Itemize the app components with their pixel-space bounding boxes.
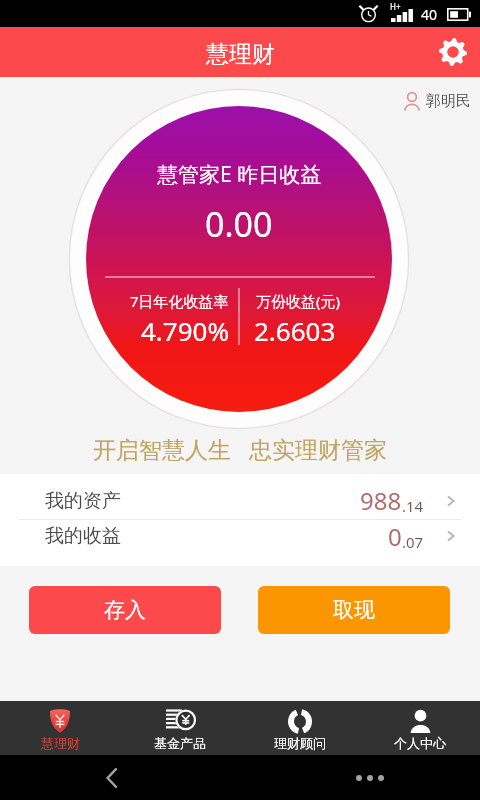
button[interactable]: Back [96, 762, 128, 794]
staticText: 开启智慧人生 忠实理财管家 [0, 433, 480, 464]
button[interactable]: 我的收益 [0, 513, 480, 559]
staticText: 慧理财 [206, 40, 275, 69]
staticText: 988 [360, 484, 402, 517]
staticText: 0.00 [205, 201, 273, 247]
staticText: 郭明民 [426, 92, 471, 111]
staticText: 7日年化收益率 [130, 291, 229, 311]
button[interactable]: 取现 [258, 586, 450, 634]
staticText: 取现 [333, 597, 375, 623]
staticText: 个人中心 [394, 735, 446, 751]
staticText: 我的资产 [45, 489, 121, 513]
staticText: .07 [402, 532, 424, 552]
staticText: 我的收益 [45, 524, 121, 548]
staticText: 万份收益(元) [256, 291, 341, 311]
button[interactable]: 我的资产 [0, 478, 480, 523]
button[interactable]: 存入 [29, 586, 221, 634]
staticText: 40 [421, 5, 438, 24]
staticText: H+ [390, 1, 401, 12]
staticText: 2.6603 [254, 313, 336, 348]
button[interactable]: 个人中心 [360, 701, 480, 755]
button[interactable]: Menu [350, 765, 390, 791]
staticText: .14 [402, 496, 424, 516]
staticText: 0 [388, 520, 402, 553]
staticText: 慧理财 [41, 735, 80, 751]
staticText: 基金产品 [154, 735, 206, 751]
button[interactable]: 慧理财 [0, 701, 120, 755]
button[interactable]: 基金产品 [120, 701, 240, 755]
staticText: 存入 [104, 597, 146, 623]
button[interactable]: 理财顾问 [240, 701, 360, 755]
staticText: 理财顾问 [274, 735, 326, 751]
staticText: 4.790% [141, 313, 230, 348]
button[interactable]: Settings [430, 29, 476, 75]
staticText: 慧管家E 昨日收益 [157, 160, 322, 189]
